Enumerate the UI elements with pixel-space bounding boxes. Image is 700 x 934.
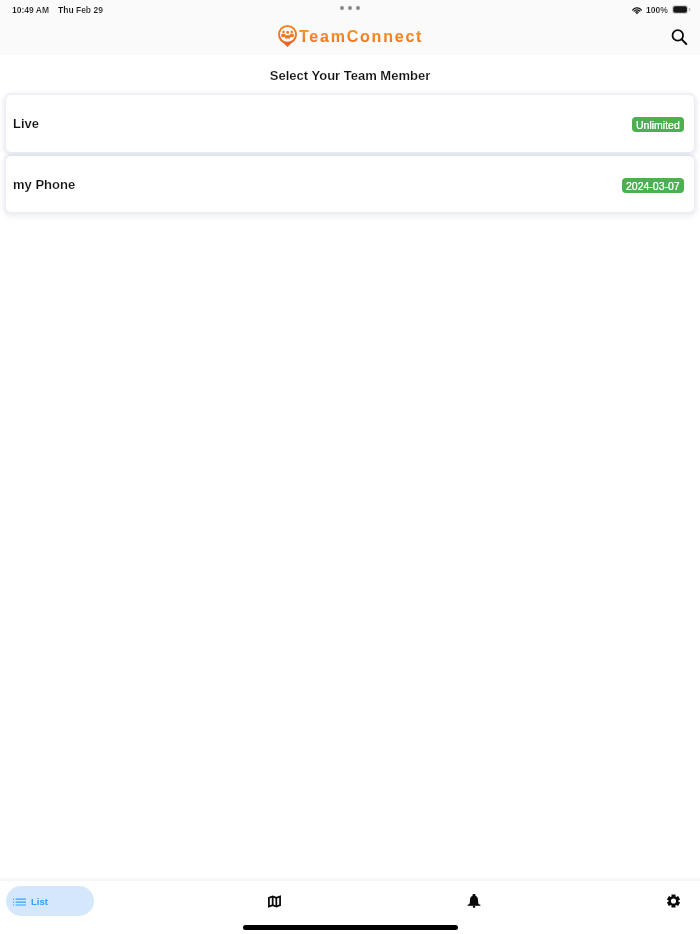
staticText: my Phone (13, 177, 76, 192)
button[interactable]: Search (666, 24, 692, 50)
button[interactable]: Notifications (452, 881, 496, 921)
staticText: TeamConnect (299, 28, 424, 46)
staticText: 2024-03-07 (626, 180, 680, 192)
button[interactable]: List (6, 886, 94, 916)
staticText: Select Your Team Member (0, 68, 700, 83)
staticText: 10:49 AM (12, 5, 50, 14)
staticText: 100% (646, 5, 668, 14)
button[interactable]: Live (6, 95, 694, 152)
staticText: Thu Feb 29 (58, 5, 103, 14)
button[interactable]: my Phone (6, 156, 694, 212)
staticText: Unlimited (636, 119, 680, 131)
button[interactable]: Settings (651, 881, 695, 921)
staticText: Live (13, 116, 40, 131)
button[interactable]: Map (252, 881, 296, 921)
staticText: List (31, 896, 48, 907)
